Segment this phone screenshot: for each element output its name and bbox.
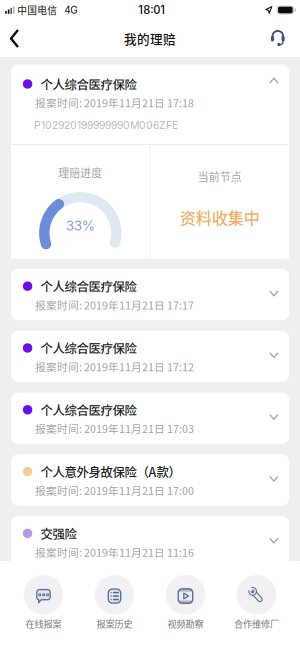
button[interactable]: 合作维修厂 xyxy=(221,575,292,630)
button[interactable]: 个人综合医疗保险 xyxy=(11,331,289,382)
staticText: 交强险 xyxy=(41,524,77,542)
staticText: 个人综合医疗保险 xyxy=(41,401,137,419)
button[interactable]: 个人综合医疗保险 xyxy=(11,64,289,258)
button[interactable]: 报案历史 xyxy=(79,575,150,630)
staticText: 合作维修厂 xyxy=(234,617,279,630)
staticText: 我的理赔 xyxy=(124,29,176,47)
button[interactable]: 个人综合医疗保险 xyxy=(11,269,289,320)
button[interactable]: 交强险 xyxy=(11,516,289,567)
button[interactable]: 在线客服 xyxy=(262,20,294,57)
button[interactable]: 个人综合医疗保险 xyxy=(11,393,289,444)
staticText: 个人综合医疗保险 xyxy=(41,75,137,93)
staticText: 报案时间: 2019年11月21日 17:12 xyxy=(35,359,194,374)
staticText: 当前节点 xyxy=(198,168,242,184)
staticText: 报案时间: 2019年11月21日 11:16 xyxy=(35,544,194,560)
staticText: 18:01 xyxy=(138,3,165,17)
staticText: 报案时间: 2019年11月21日 17:18 xyxy=(35,95,194,110)
staticText: 视频勘察 xyxy=(167,617,203,630)
button[interactable]: 个人意外身故保险（A款） xyxy=(11,454,289,506)
button[interactable]: 返回 xyxy=(0,20,30,57)
staticText: 个人意外身故保险（A款） xyxy=(41,463,181,481)
button[interactable]: 在线报案 xyxy=(8,575,79,630)
staticText: 报案历史 xyxy=(96,617,132,630)
staticText: 报案时间: 2019年11月21日 17:00 xyxy=(35,482,194,498)
staticText: 在线报案 xyxy=(25,617,61,630)
staticText: 报案时间: 2019年11月21日 17:03 xyxy=(35,421,194,436)
staticText: 中国电信 xyxy=(17,3,57,17)
staticText: 个人综合医疗保险 xyxy=(41,339,137,357)
staticText: 资料收集中 xyxy=(180,205,260,229)
button[interactable]: 视频勘察 xyxy=(150,575,221,630)
staticText: P102920199999990M006ZFE xyxy=(34,119,178,131)
staticText: 理赔进度 xyxy=(58,164,102,180)
staticText: 个人综合医疗保险 xyxy=(41,277,137,295)
staticText: 4G xyxy=(64,4,77,16)
staticText: 报案时间: 2019年11月21日 17:17 xyxy=(35,297,194,312)
staticText: 33% xyxy=(66,217,95,234)
